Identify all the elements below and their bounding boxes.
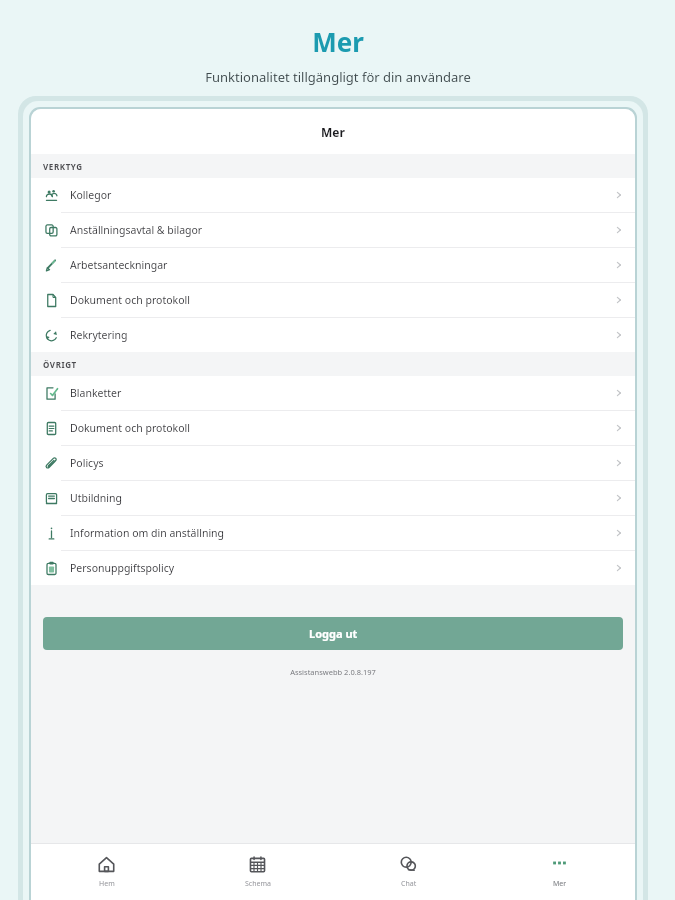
staticText: Utbildning	[70, 491, 122, 505]
button[interactable]: Blanketter	[31, 376, 635, 410]
staticText: Chat	[401, 879, 417, 889]
staticText: Mer	[312, 24, 364, 59]
staticText: Anställningsavtal & bilagor	[70, 223, 203, 237]
staticText: Schema	[245, 879, 271, 889]
button[interactable]: Chat	[333, 844, 484, 900]
button[interactable]: Dokument och protokoll	[31, 410, 635, 445]
staticText: Personuppgiftspolicy	[70, 561, 175, 575]
button[interactable]: Logga ut	[43, 617, 623, 650]
staticText: Rekrytering	[70, 328, 128, 342]
staticText: Dokument och protokoll	[70, 421, 190, 435]
button[interactable]: Mer	[484, 844, 635, 900]
staticText: Blanketter	[70, 386, 122, 400]
staticText: Logga ut	[309, 626, 358, 641]
staticText: Arbetsanteckningar	[70, 258, 168, 272]
staticText: Mer	[553, 879, 567, 889]
button[interactable]: Policys	[31, 445, 635, 480]
staticText: Dokument och protokoll	[70, 293, 190, 307]
button[interactable]: Information om din anställning	[31, 515, 635, 550]
staticText: ÖVRIGT	[43, 359, 77, 370]
staticText: Hem	[99, 879, 115, 889]
button[interactable]: Dokument och protokoll	[31, 282, 635, 317]
button[interactable]: Arbetsanteckningar	[31, 247, 635, 282]
staticText: Assistanswebb 2.0.8.197	[31, 667, 635, 677]
staticText: Policys	[70, 456, 104, 470]
staticText: Kollegor	[70, 188, 112, 202]
button[interactable]: Schema	[182, 844, 333, 900]
button[interactable]: Personuppgiftspolicy	[31, 550, 635, 585]
staticText: VERKTYG	[43, 161, 83, 172]
button[interactable]: Rekrytering	[31, 317, 635, 352]
staticText: Mer	[321, 124, 345, 140]
staticText: Information om din anställning	[70, 526, 225, 540]
staticText: Funktionalitet tillgängligt för din anvä…	[205, 68, 471, 86]
button[interactable]: Hem	[31, 844, 182, 900]
button[interactable]: Kollegor	[31, 178, 635, 212]
button[interactable]: Utbildning	[31, 480, 635, 515]
button[interactable]: Anställningsavtal & bilagor	[31, 212, 635, 247]
